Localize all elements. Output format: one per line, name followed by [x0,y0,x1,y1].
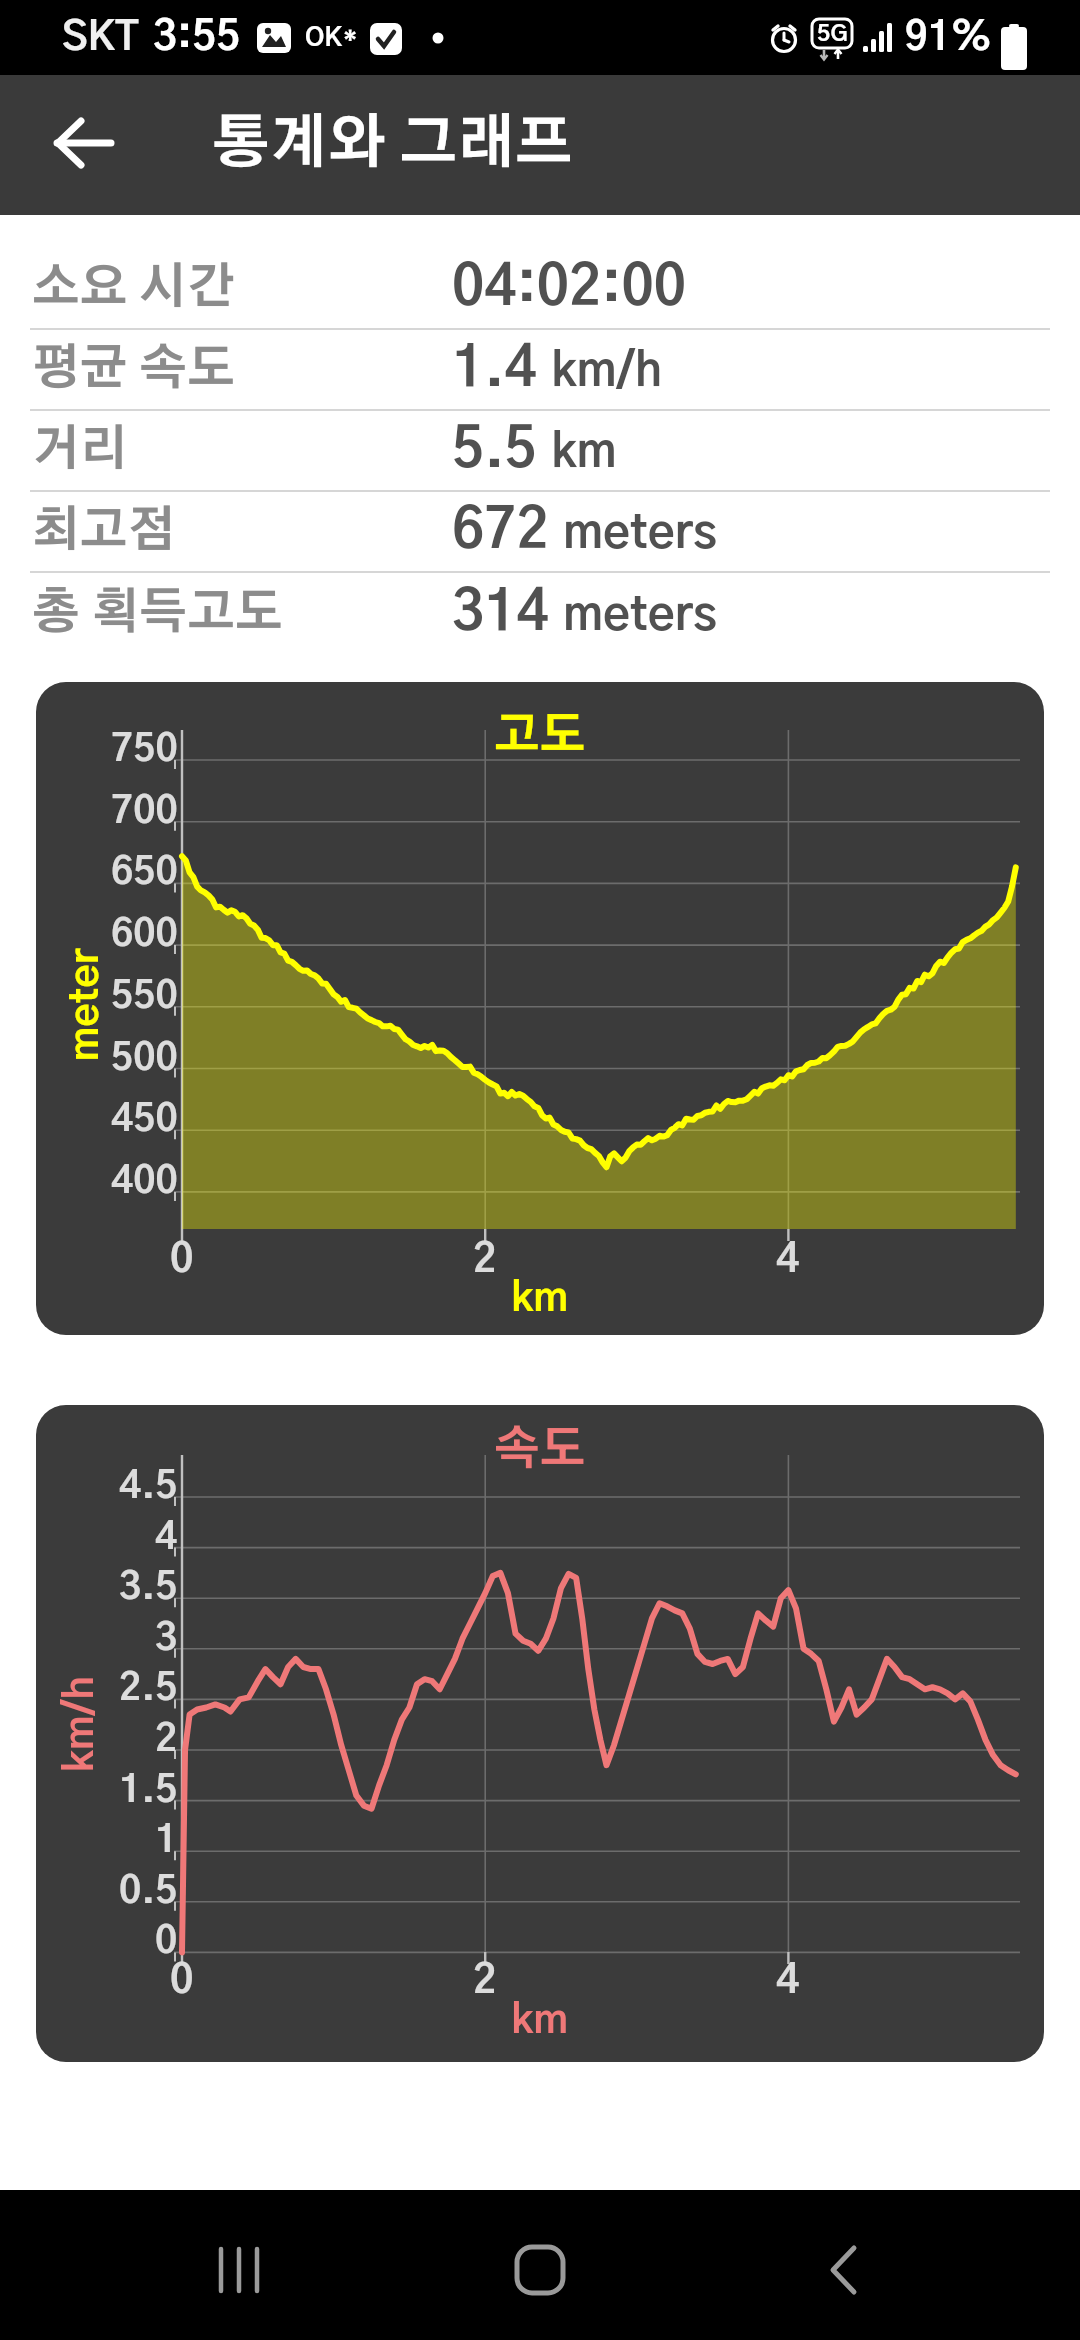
staticText: km/h [60,1675,100,1772]
button[interactable] [786,2210,906,2330]
staticText: 3 [155,1620,178,1658]
button[interactable]: 총 획득고도 [0,573,1080,654]
staticText: 91% [905,19,992,58]
staticText: 2 [473,1961,497,2001]
button[interactable] [182,2210,302,2330]
staticText: 1.5 [119,1772,178,1810]
staticText: 0 [170,1240,194,1280]
staticText: 672 [452,504,549,559]
staticText: 1.4 [452,342,537,397]
staticText: 4 [776,1961,800,2001]
staticText: 314 [452,586,549,641]
button[interactable]: 평균 속도 [0,330,1080,409]
staticText: 700 [111,793,178,831]
staticText: km [511,1279,569,1319]
staticText: 4.5 [119,1468,178,1506]
button[interactable]: 최고점 [0,492,1080,571]
staticText: 총 획득고도 [32,590,283,638]
staticText: 04:02:00 [452,261,687,316]
staticText: 0 [170,1961,194,2001]
staticText: 0 [155,1923,178,1961]
staticText: 소요 시간 [32,265,235,313]
staticText: meter [65,948,105,1061]
staticText: 750 [111,731,178,769]
staticText: km [551,430,617,476]
staticText: meters [563,511,717,557]
staticText: 속도 [494,1427,586,1473]
staticText: 450 [111,1101,178,1139]
button[interactable] [480,2210,600,2330]
staticText: 2 [473,1240,497,1280]
staticText: 평균 속도 [32,346,235,394]
staticText: OK⁎ [305,25,358,51]
button[interactable]: 거리 [0,411,1080,490]
staticText: 5.5 [452,423,537,478]
staticText: 650 [111,854,178,892]
staticText: 600 [111,916,178,954]
staticText: 1 [155,1822,178,1860]
staticText: 통계와 그래프 [212,116,573,174]
staticText: 400 [111,1163,178,1201]
staticText: 최고점 [32,508,176,556]
staticText: 2 [155,1721,178,1759]
staticText: 3:55 [153,17,241,58]
staticText: 500 [111,1040,178,1078]
button[interactable]: 소요 시간 [0,249,1080,328]
staticText: 4 [155,1519,178,1557]
staticText: meters [563,593,717,639]
staticText: 3.5 [119,1569,178,1607]
button[interactable] [40,100,130,190]
staticText: 5G [817,23,848,46]
staticText: 거리 [32,427,128,475]
staticText: 고도 [494,713,586,759]
staticText: 4 [776,1240,800,1280]
staticText: 0.5 [119,1873,178,1911]
staticText: 550 [111,978,178,1016]
staticText: SKT [62,18,139,58]
staticText: 2.5 [119,1670,178,1708]
staticText: km [511,2001,569,2041]
staticText: km/h [551,349,663,395]
